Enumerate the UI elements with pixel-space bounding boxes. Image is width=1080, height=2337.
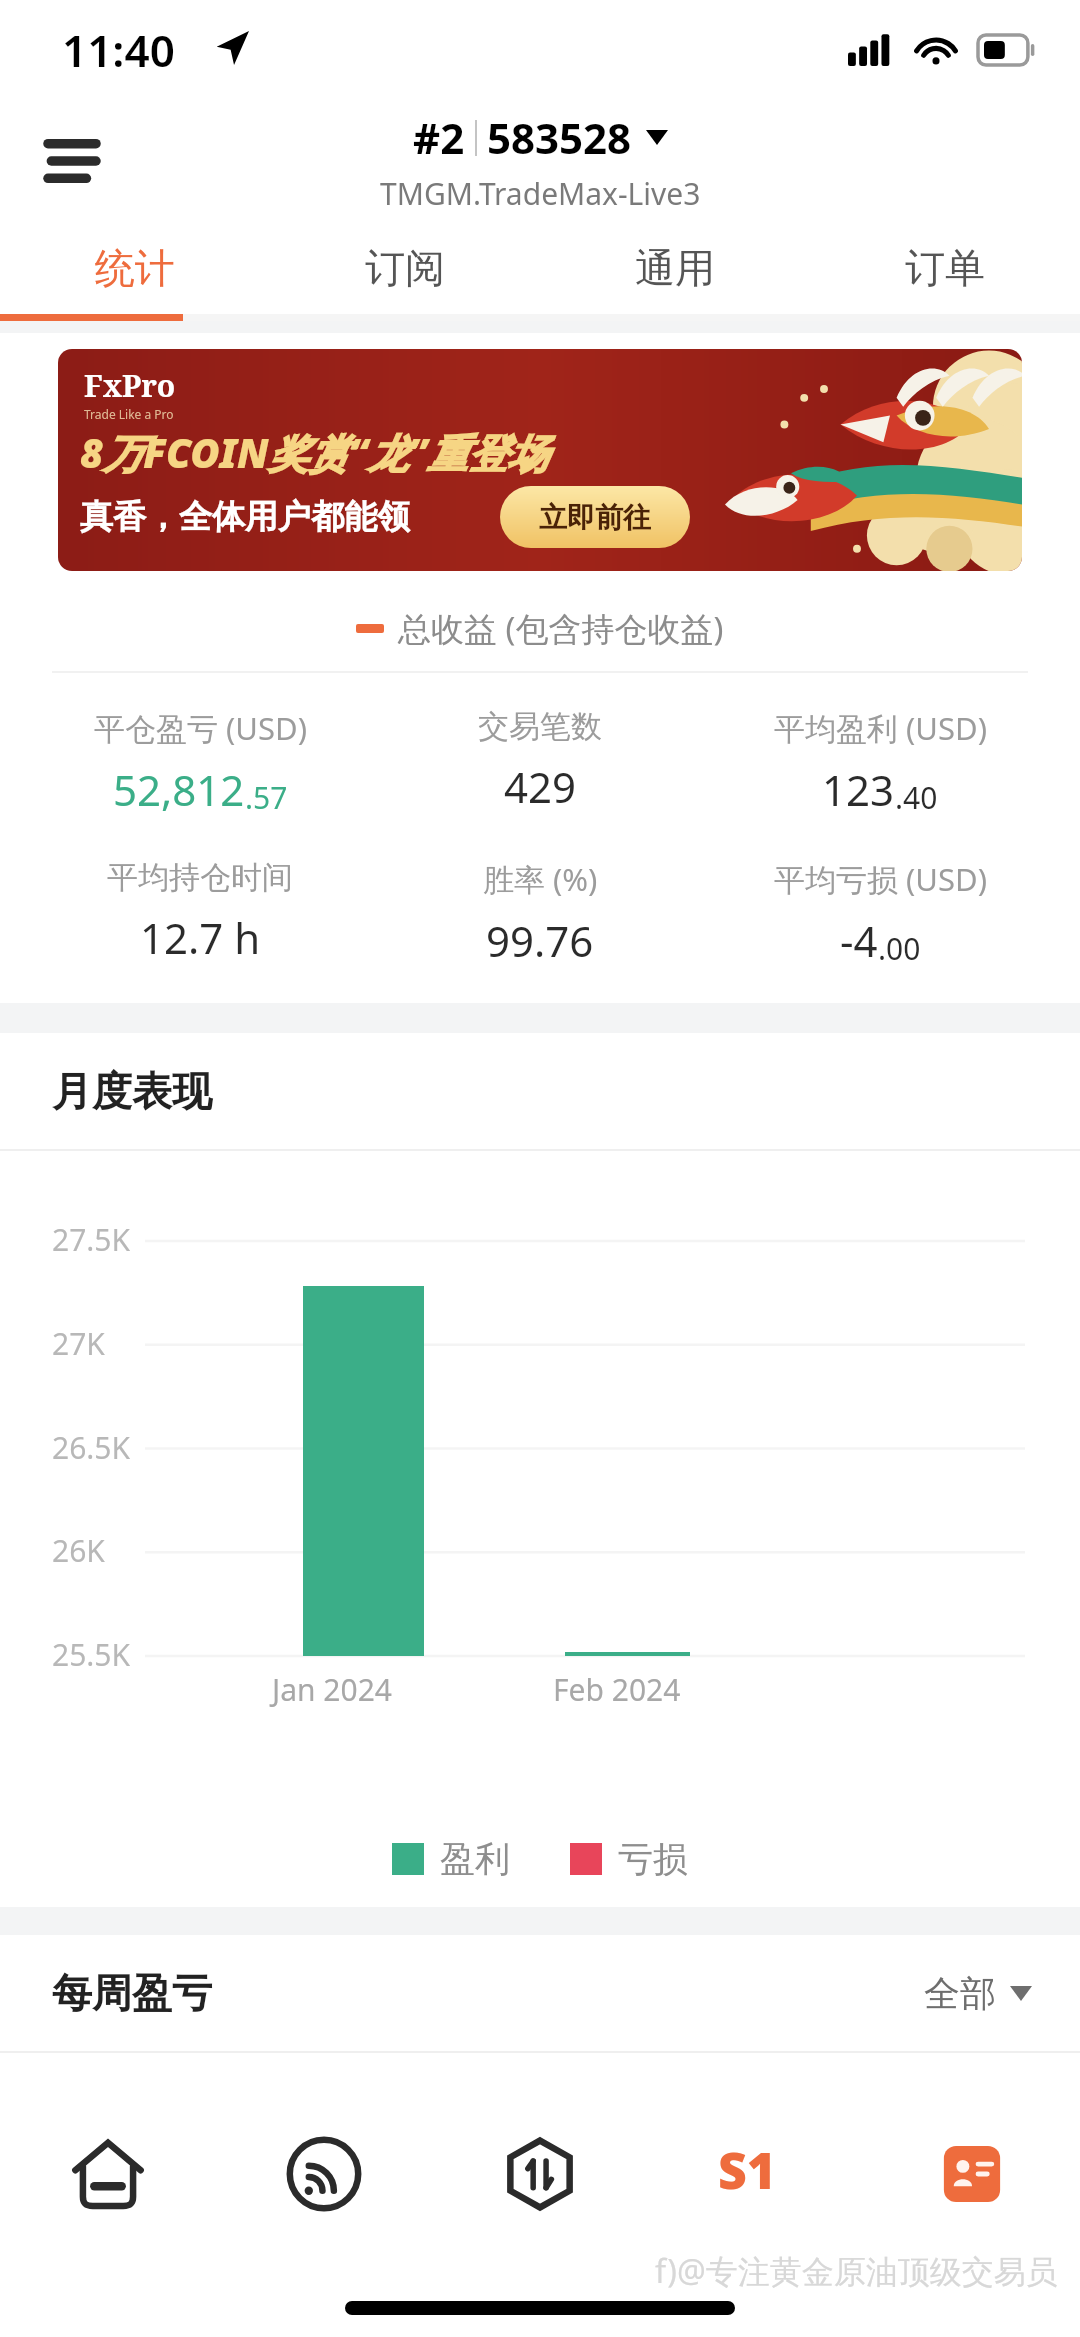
staticText: Feb 2024 — [553, 1669, 681, 1710]
staticText: 583528 — [487, 109, 632, 166]
staticText: 25.5K — [52, 1634, 131, 1675]
staticText: 统计 — [95, 243, 175, 293]
staticText: 交易笔数 — [478, 707, 602, 746]
staticText: 平仓盈亏 (USD) — [94, 707, 307, 749]
staticText: 月度表现 — [52, 1066, 212, 1116]
staticText: .40 — [895, 777, 938, 818]
staticText: 52,812 — [113, 761, 245, 818]
staticText: 平均亏损 (USD) — [774, 858, 987, 900]
staticText: 429 — [504, 758, 577, 815]
staticText: 12.7 h — [140, 909, 261, 966]
staticText: 8万FCOIN奖赏“龙”重登场 — [80, 425, 548, 480]
button[interactable]: 订单 — [810, 222, 1080, 314]
staticText: 27.5K — [52, 1219, 131, 1260]
button[interactable]: Profile — [864, 2099, 1080, 2249]
staticText: S13 — [718, 2136, 794, 2212]
button[interactable]: #2 — [380, 109, 701, 214]
staticText: 27K — [52, 1323, 105, 1364]
staticText: 订单 — [905, 243, 985, 293]
staticText: FxPro — [84, 365, 176, 406]
staticText: 亏损 — [618, 1837, 688, 1881]
staticText: TMGM.TradeMax-Live3 — [380, 173, 701, 214]
staticText: 每周盈亏 — [52, 1968, 212, 2018]
button[interactable]: S13 — [648, 2099, 864, 2249]
button[interactable]: 通用 — [540, 222, 810, 314]
button[interactable]: Trade — [432, 2099, 648, 2249]
button[interactable]: Signals — [216, 2099, 432, 2249]
staticText: f)@专注黄金原油顶级交易员 — [655, 2249, 1058, 2293]
staticText: -4 — [840, 912, 878, 969]
staticText: 真香，全体用户都能领 — [80, 496, 410, 538]
staticText: .00 — [878, 928, 921, 969]
button[interactable]: 全部 — [924, 1971, 1032, 2016]
staticText: 11:40 — [62, 20, 175, 80]
staticText: 平均盈利 (USD) — [774, 707, 987, 749]
staticText: #2 — [413, 109, 465, 166]
staticText: 订阅 — [365, 243, 445, 293]
staticText: 通用 — [635, 243, 715, 293]
staticText: 123 — [822, 761, 895, 818]
staticText: .57 — [245, 777, 288, 818]
staticText: 26.5K — [52, 1427, 131, 1468]
button[interactable]: Menu — [30, 119, 114, 203]
staticText: 全部 — [924, 1971, 996, 2016]
button[interactable]: 统计 — [0, 222, 270, 314]
staticText: Trade Like a Pro — [84, 406, 174, 422]
staticText: 胜率 (%) — [483, 858, 598, 900]
staticText: 盈利 — [440, 1837, 510, 1881]
button[interactable]: FxPro — [58, 349, 1022, 571]
staticText: 平均持仓时间 — [107, 858, 293, 897]
button[interactable]: 订阅 — [270, 222, 540, 314]
staticText: 立即前往 — [539, 500, 651, 535]
button[interactable]: Home — [0, 2099, 216, 2249]
staticText: 99.76 — [486, 912, 594, 969]
staticText: Jan 2024 — [272, 1669, 392, 1710]
staticText: 总收益 (包含持仓收益) — [398, 606, 724, 651]
staticText: 26K — [52, 1530, 105, 1571]
button[interactable]: 立即前往 — [500, 486, 690, 548]
